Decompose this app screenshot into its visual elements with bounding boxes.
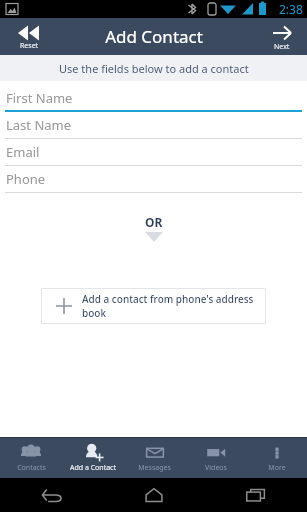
staticText: Phone: [6, 170, 46, 188]
button[interactable]: Next: [257, 18, 307, 55]
button[interactable]: Add a contact from phone's address book: [41, 288, 266, 324]
staticText: Add Contact: [105, 25, 203, 48]
button[interactable]: Videos: [185, 438, 246, 478]
staticText: Contacts: [17, 463, 46, 473]
staticText: Messages: [138, 463, 171, 473]
staticText: Last Name: [6, 116, 72, 134]
staticText: 2:38: [279, 1, 303, 17]
button[interactable]: More: [246, 438, 307, 478]
button[interactable]: Recent apps: [205, 478, 307, 512]
staticText: Add a Contact: [70, 463, 116, 473]
button[interactable]: Email: [0, 139, 307, 166]
button[interactable]: Messages: [124, 438, 185, 478]
button[interactable]: First Name: [0, 85, 307, 112]
staticText: Videos: [205, 463, 227, 473]
button[interactable]: Back: [0, 478, 103, 512]
button[interactable]: Contacts: [0, 438, 62, 478]
staticText: OR: [145, 214, 163, 230]
staticText: First Name: [6, 89, 73, 107]
staticText: Use the fields below to add a contact: [59, 61, 249, 76]
button[interactable]: Last Name: [0, 112, 307, 139]
staticText: Add a contact from phone's address book: [82, 292, 266, 320]
staticText: Email: [6, 143, 40, 161]
button[interactable]: Add a Contact: [62, 438, 124, 478]
button[interactable]: Phone: [0, 166, 307, 193]
staticText: Reset: [20, 41, 39, 51]
button[interactable]: Reset: [0, 18, 58, 55]
staticText: Next: [274, 42, 290, 52]
staticText: More: [268, 463, 286, 473]
button[interactable]: Home: [103, 478, 205, 512]
